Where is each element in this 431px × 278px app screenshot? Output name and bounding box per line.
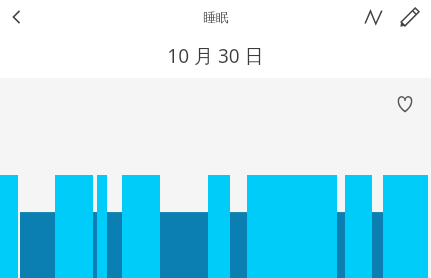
staticText: 睡眠 xyxy=(203,9,229,25)
button[interactable]: Edit xyxy=(391,0,427,34)
staticText: 10 月 30 日 xyxy=(167,43,264,69)
button[interactable]: Trends xyxy=(355,0,391,34)
button[interactable]: Back xyxy=(0,0,34,34)
button[interactable]: Favorite xyxy=(389,88,421,120)
